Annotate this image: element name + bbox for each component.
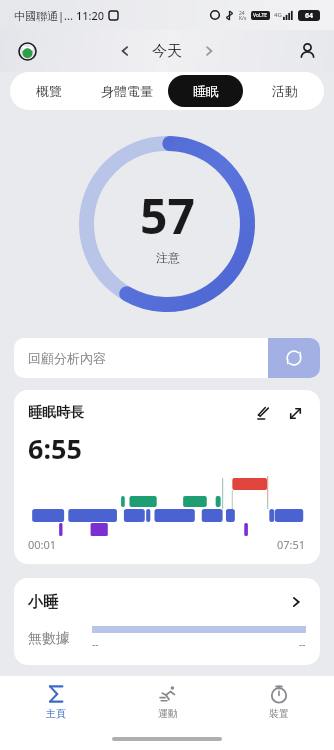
staticText: 概覽 — [36, 83, 62, 99]
button[interactable]: 概覽 — [12, 75, 86, 107]
staticText: 57 — [140, 183, 195, 248]
button[interactable]: 活動 — [247, 75, 322, 107]
staticText: 無數據 — [28, 630, 70, 648]
staticText: 6:55 — [28, 430, 82, 467]
staticText: 00:01 — [28, 537, 57, 552]
staticText: 4G — [274, 11, 282, 19]
button[interactable]: 小睡 — [14, 578, 320, 665]
button[interactable]: 睡眠時長 — [14, 390, 320, 564]
button[interactable]: 回顧分析內容 — [14, 338, 320, 378]
staticText: 睡眠時長 — [28, 404, 84, 422]
staticText: -- — [92, 637, 99, 651]
staticText: 07:51 — [277, 537, 306, 552]
button[interactable]: Expand — [284, 402, 306, 424]
button[interactable]: Profile — [294, 38, 320, 64]
button[interactable]: Edit — [252, 402, 274, 424]
staticText: 主頁 — [46, 707, 66, 720]
button[interactable]: Previous day — [112, 38, 138, 64]
staticText: 睡眠 — [193, 83, 219, 99]
staticText: VoLTE — [253, 12, 268, 19]
staticText: 今天 — [152, 42, 182, 61]
staticText: 裝置 — [269, 707, 289, 720]
staticText: 身體電量 — [101, 83, 153, 99]
staticText: 注意 — [156, 250, 180, 265]
staticText: 運動 — [158, 707, 178, 720]
button[interactable]: 運動 — [112, 676, 223, 728]
staticText: 回顧分析內容 — [28, 350, 106, 366]
button[interactable]: 主頁 — [0, 676, 112, 728]
staticText: 中國聯通|... 11:20 — [14, 8, 105, 23]
staticText: -- — [299, 637, 306, 651]
button[interactable]: Next day — [196, 38, 222, 64]
staticText: 小睡 — [28, 593, 58, 612]
button[interactable]: 睡眠 — [168, 75, 243, 107]
other: Open naps — [286, 592, 306, 612]
staticText: 24 K/s — [239, 10, 247, 21]
button[interactable]: 裝置 — [223, 676, 334, 728]
button[interactable]: Watch — [14, 38, 40, 64]
staticText: 64 — [305, 11, 314, 21]
staticText: 活動 — [272, 83, 298, 99]
button[interactable]: 身體電量 — [90, 75, 164, 107]
button[interactable]: Refresh — [268, 338, 320, 378]
